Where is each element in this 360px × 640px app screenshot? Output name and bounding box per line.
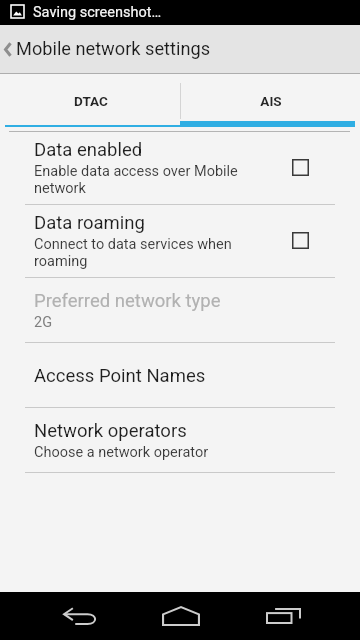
button[interactable]: Mobile network settings (0, 25, 360, 74)
button[interactable]: Toggle Data enabled (277, 144, 323, 190)
staticText: Data enabled (34, 139, 143, 160)
staticText: Saving screenshot… (33, 4, 162, 21)
staticText: Enable data access over Mobile network (34, 163, 262, 197)
button[interactable]: AIS (180, 74, 360, 126)
button[interactable]: Toggle Data roaming (277, 217, 323, 263)
button[interactable]: Access Point Names (0, 343, 360, 407)
staticText: Network operators (34, 420, 187, 441)
staticText: Choose a network operator (34, 444, 209, 461)
button[interactable]: Data roaming (0, 205, 360, 277)
button[interactable]: Back (63, 592, 97, 640)
staticText: 2G (34, 314, 53, 331)
staticText: Preferred network type (34, 290, 221, 311)
button[interactable]: Network operators (0, 408, 360, 472)
staticText: Access Point Names (34, 365, 206, 386)
button[interactable]: Home (162, 592, 200, 640)
button[interactable]: Data enabled (0, 132, 360, 204)
staticText: AIS (260, 93, 282, 109)
staticText: DTAC (74, 93, 108, 109)
button[interactable]: Recent apps (266, 592, 301, 640)
staticText: Mobile network settings (16, 38, 211, 59)
button[interactable]: DTAC (0, 74, 180, 126)
staticText: Data roaming (34, 212, 145, 233)
button[interactable]: Preferred network type (0, 278, 360, 342)
staticText: Connect to data services when roaming (34, 236, 262, 270)
